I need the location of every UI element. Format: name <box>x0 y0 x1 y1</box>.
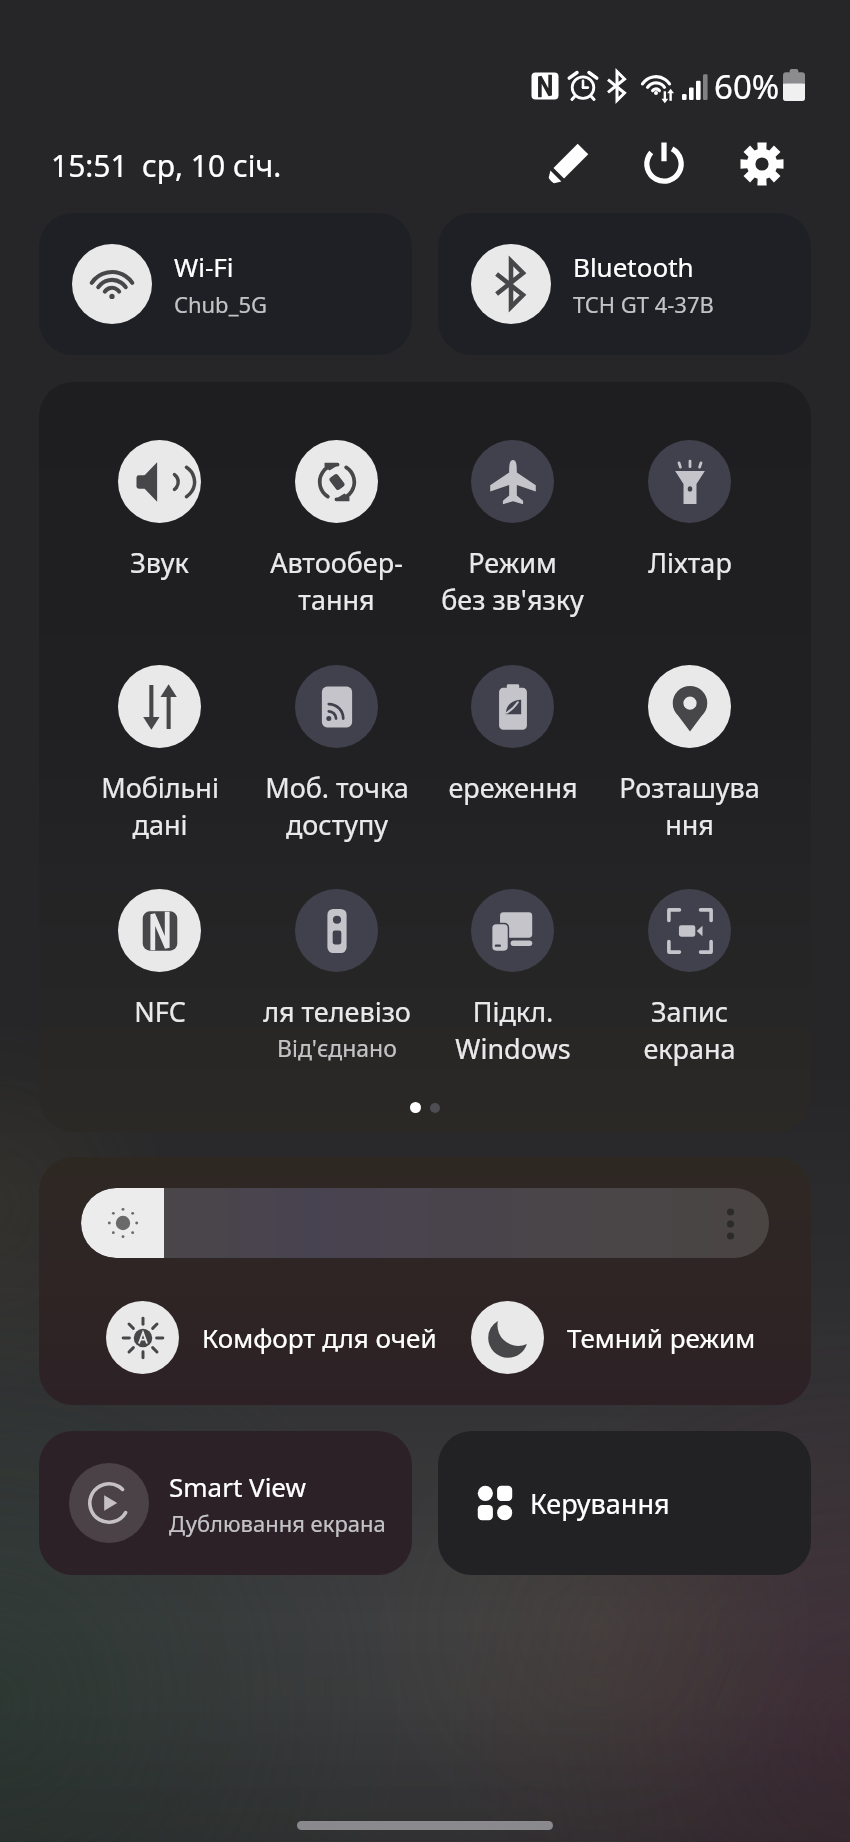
button[interactable]: Ліхтар <box>607 440 772 581</box>
staticText: ля телевізо <box>263 993 411 1030</box>
button[interactable]: Запис екрана <box>607 889 772 1067</box>
staticText: NFC <box>134 993 186 1030</box>
button[interactable]: Звук <box>77 440 242 581</box>
staticText: Chub_5G <box>174 289 267 319</box>
button[interactable]: ля телевізо <box>254 889 419 1063</box>
button[interactable]: Комфорт для очей <box>106 1297 437 1377</box>
staticText: Режим без зв'язку <box>441 544 584 618</box>
staticText: Запис екрана <box>643 993 736 1067</box>
staticText: Мобільні дані <box>101 769 219 843</box>
staticText: Wi-Fi <box>174 249 234 284</box>
button[interactable]: Керування <box>438 1431 811 1575</box>
button[interactable]: Bluetooth <box>438 213 811 355</box>
button[interactable]: Power off <box>640 140 688 188</box>
staticText: 15:51 <box>51 145 128 186</box>
button[interactable]: Моб. точка доступу <box>254 665 419 843</box>
staticText: Керування <box>530 1485 670 1522</box>
button[interactable]: Розташува ння <box>607 665 772 843</box>
staticText: Звук <box>130 544 189 581</box>
staticText: Комфорт для очей <box>202 1320 437 1355</box>
staticText: Дублювання екрана <box>169 1508 386 1538</box>
button[interactable]: Smart View <box>39 1431 412 1575</box>
staticText: Темний режим <box>567 1320 756 1355</box>
staticText: Моб. точка доступу <box>265 769 409 843</box>
staticText: TCH GT 4-37B <box>573 289 714 319</box>
button[interactable]: Режим без зв'язку <box>430 440 595 618</box>
button[interactable]: Edit <box>544 140 592 188</box>
staticText: Від'єднано <box>277 1032 397 1063</box>
staticText: Smart View <box>169 1469 306 1504</box>
staticText: ср, 10 січ. <box>142 145 282 186</box>
button[interactable]: Settings <box>738 140 786 188</box>
staticText: Автообер- тання <box>270 544 403 618</box>
staticText: Ліхтар <box>648 544 732 581</box>
button[interactable]: Мобільні дані <box>77 665 242 843</box>
button[interactable]: Автообер- тання <box>254 440 419 618</box>
button[interactable]: Темний режим <box>471 1297 756 1377</box>
button[interactable]: Wi-Fi <box>39 213 412 355</box>
staticText: 60% <box>714 64 780 109</box>
staticText: ереження <box>448 769 578 806</box>
staticText: Розташува ння <box>619 769 760 843</box>
button[interactable] <box>81 1188 769 1258</box>
button[interactable]: ереження <box>430 665 595 806</box>
staticText: Підкл. Windows <box>455 993 571 1067</box>
button[interactable]: Підкл. Windows <box>430 889 595 1067</box>
button[interactable]: NFC <box>77 889 242 1030</box>
staticText: Bluetooth <box>573 249 694 284</box>
